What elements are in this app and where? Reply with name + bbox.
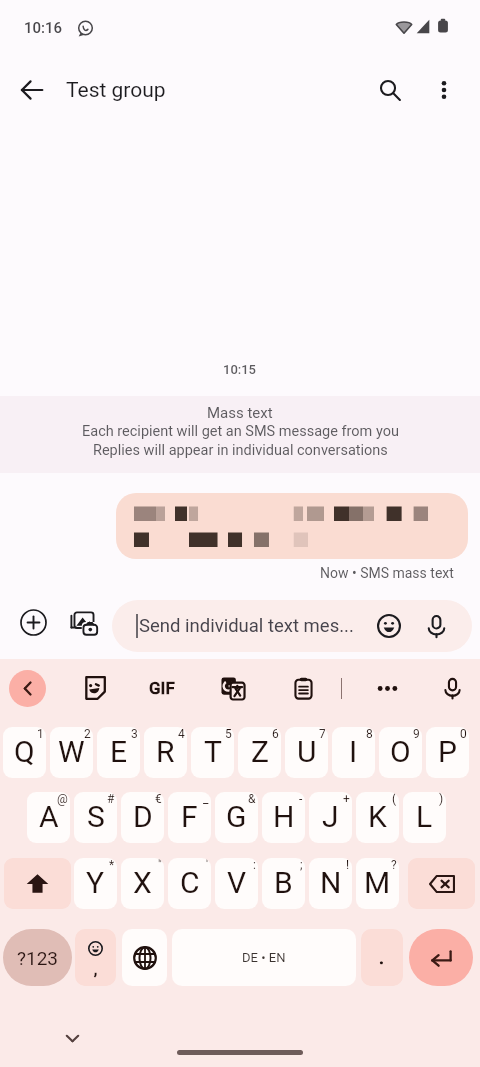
button[interactable]: K: [356, 792, 399, 843]
button[interactable]: Enter: [409, 929, 473, 986]
button[interactable]: F: [168, 792, 211, 843]
staticText: T: [204, 734, 222, 769]
button[interactable]: N: [309, 858, 352, 909]
button[interactable]: Q: [3, 727, 46, 778]
staticText: B: [274, 865, 293, 900]
staticText: Mass text: [207, 404, 273, 422]
button[interactable]: Search: [368, 68, 412, 112]
staticText: X: [133, 865, 152, 900]
button[interactable]: P: [426, 727, 469, 778]
staticText: -: [299, 792, 303, 806]
button[interactable]: Change language: [122, 929, 167, 986]
staticText: V: [227, 865, 247, 900]
staticText: J: [322, 799, 339, 834]
staticText: I: [349, 734, 358, 769]
button[interactable]: V: [215, 858, 258, 909]
staticText: ,: [94, 962, 98, 978]
staticText: 10:15: [223, 362, 257, 377]
staticText: D: [133, 799, 153, 834]
staticText: 2: [84, 727, 91, 741]
staticText: ?123: [17, 947, 59, 969]
staticText: !: [346, 858, 350, 872]
button[interactable]: Voice input: [431, 667, 473, 709]
button[interactable]: More options: [422, 68, 466, 112]
staticText: L: [416, 799, 433, 834]
staticText: Q: [14, 734, 35, 769]
staticText: 4: [178, 727, 185, 741]
button[interactable]: T: [191, 727, 234, 778]
staticText: 5: [225, 727, 232, 741]
button[interactable]: Clipboard: [282, 667, 324, 709]
staticText: H: [273, 799, 295, 834]
staticText: C: [180, 865, 200, 900]
staticText: @: [57, 792, 68, 806]
button[interactable]: Emoji: [369, 606, 409, 646]
button[interactable]: S: [74, 792, 117, 843]
button[interactable]: Y: [74, 858, 117, 909]
button[interactable]: L: [403, 792, 446, 843]
button[interactable]: DE • EN: [172, 929, 356, 986]
button[interactable]: Stickers: [73, 667, 115, 709]
button[interactable]: A: [27, 792, 70, 843]
button[interactable]: Z: [238, 727, 281, 778]
button[interactable]: C: [168, 858, 211, 909]
staticText: .: [379, 947, 385, 968]
staticText: Test group: [66, 78, 166, 103]
button[interactable]: Send individual text mes...: [112, 600, 472, 652]
button[interactable]: Hide keyboard: [58, 1024, 86, 1052]
button[interactable]: G: [215, 792, 258, 843]
button[interactable]: B: [262, 858, 305, 909]
button[interactable]: Translate: [212, 667, 254, 709]
staticText: #: [107, 792, 115, 806]
staticText: Replies will appear in individual conver…: [93, 442, 388, 459]
staticText: Y: [86, 865, 105, 900]
button[interactable]: Back: [10, 68, 54, 112]
button[interactable]: GIF: [141, 667, 183, 709]
button[interactable]: Shift: [4, 858, 71, 909]
button[interactable]: Period: [361, 929, 403, 986]
button[interactable]: Backspace: [408, 858, 475, 909]
button[interactable]: Emoji and comma: [75, 929, 116, 986]
staticText: €: [155, 792, 162, 806]
staticText: 7: [319, 727, 326, 741]
button[interactable]: D: [121, 792, 164, 843]
button[interactable]: U: [285, 727, 328, 778]
button[interactable]: M: [356, 858, 399, 909]
button[interactable]: Add attachment: [11, 600, 56, 645]
staticText: S: [87, 799, 105, 834]
button[interactable]: I: [332, 727, 375, 778]
staticText: *: [109, 858, 115, 872]
staticText: Z: [251, 734, 269, 769]
staticText: ": [158, 858, 162, 872]
button[interactable]: E: [97, 727, 140, 778]
staticText: U: [297, 734, 317, 769]
button[interactable]: H: [262, 792, 305, 843]
button[interactable]: J: [309, 792, 352, 843]
staticText: ': [206, 858, 209, 872]
staticText: A: [39, 799, 59, 834]
button[interactable]: More options: [366, 667, 408, 709]
staticText: Send individual text mes...: [139, 615, 354, 637]
staticText: F: [181, 799, 198, 834]
staticText: _: [203, 792, 209, 806]
staticText: 6: [272, 727, 279, 741]
staticText: M: [364, 865, 391, 900]
button[interactable]: R: [144, 727, 187, 778]
button[interactable]: [116, 493, 468, 559]
staticText: Now • SMS mass text: [320, 565, 454, 581]
button[interactable]: Close keyboard panel: [9, 670, 46, 707]
button[interactable]: X: [121, 858, 164, 909]
button[interactable]: Voice message: [416, 606, 456, 646]
button[interactable]: Gallery and camera: [61, 600, 106, 645]
staticText: R: [156, 734, 175, 769]
button[interactable]: W: [50, 727, 93, 778]
staticText: G: [226, 799, 247, 834]
staticText: 1: [37, 727, 44, 741]
staticText: N: [320, 865, 342, 900]
staticText: Each recipient will get an SMS message f…: [82, 423, 399, 440]
staticText: 0: [460, 727, 467, 741]
button[interactable]: ?123: [3, 929, 72, 986]
button[interactable]: O: [379, 727, 422, 778]
staticText: O: [390, 734, 411, 769]
staticText: P: [438, 734, 457, 769]
